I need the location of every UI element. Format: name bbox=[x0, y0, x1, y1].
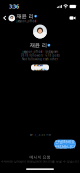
staticText: 3:36 bbox=[9, 3, 19, 10]
button[interactable]: View profile bbox=[31, 64, 49, 70]
staticText: 재윤 리 bbox=[17, 13, 34, 19]
button[interactable]: Video call bbox=[68, 13, 77, 22]
staticText: Not following each other bbox=[22, 57, 58, 61]
staticText: jaeyoon_official bbox=[17, 20, 37, 23]
button[interactable]: 재윤 리 bbox=[8, 13, 37, 22]
staticText: 안녕하세요 반갑습니다 bbox=[55, 139, 75, 149]
staticText: 수락하면 상대방이 회원님에게 메시지를 보낼 수 있습니다 bbox=[1, 160, 79, 163]
staticText: 메시지 요청 bbox=[29, 155, 50, 159]
staticText: 3878 followers · 678 posts bbox=[20, 54, 59, 57]
button[interactable]: Back bbox=[0, 13, 8, 22]
staticText: SEP 7, 3:35 PM bbox=[29, 133, 50, 137]
staticText: 재윤 리 bbox=[30, 42, 47, 48]
staticText: jaeyoon_official · Instagram bbox=[22, 50, 57, 53]
staticText: View profile bbox=[33, 62, 46, 73]
